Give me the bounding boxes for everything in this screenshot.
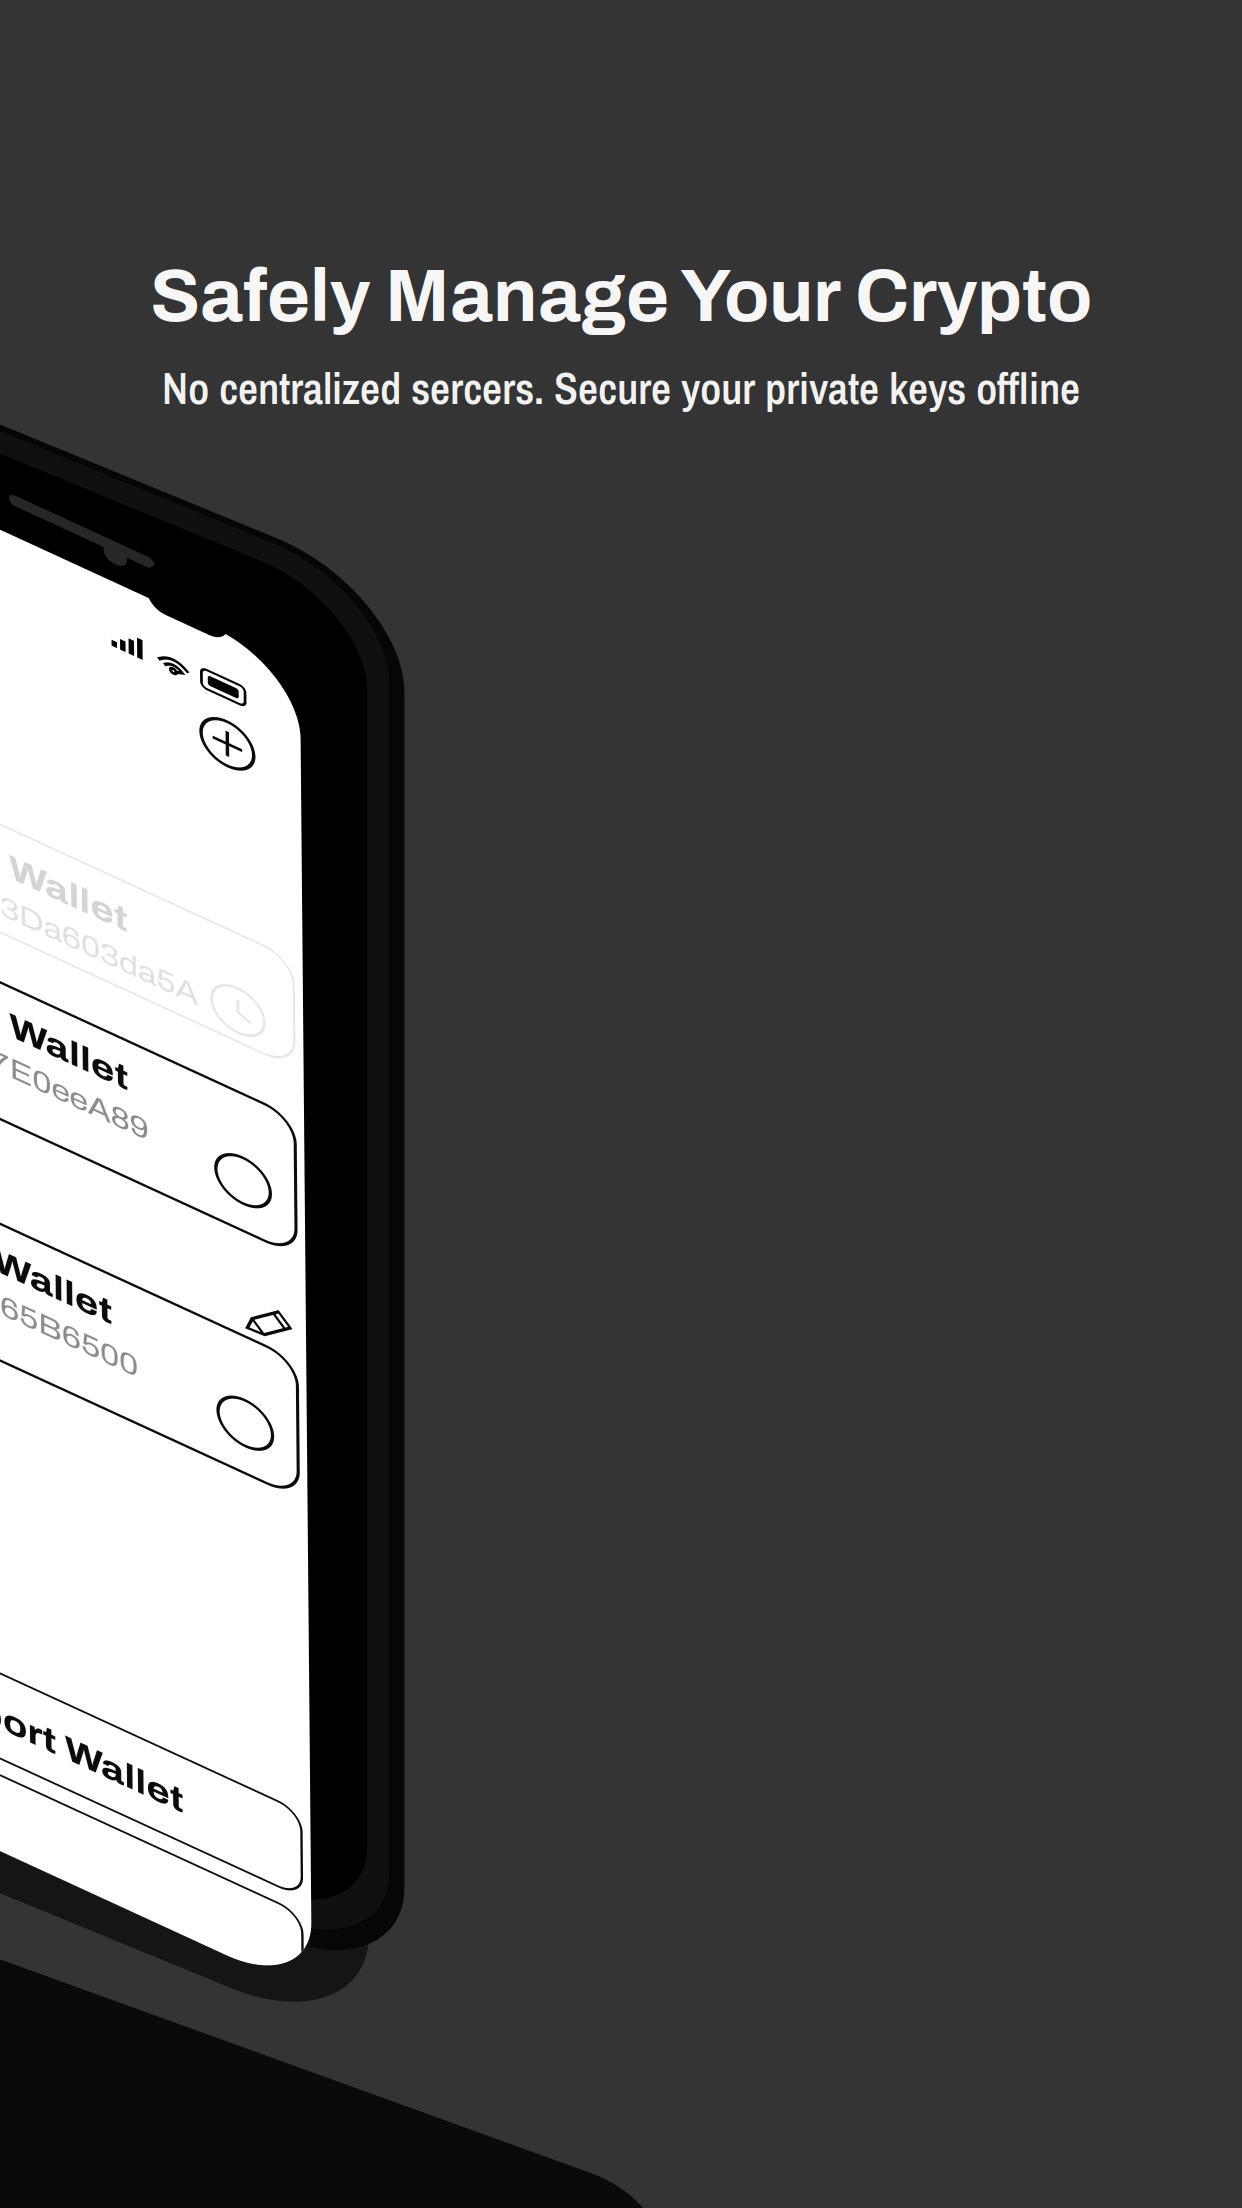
staticText: 0x9Ab31F…65B6500 bbox=[282, 1000, 634, 1040]
staticText: Safely Manage Your Crypto bbox=[150, 256, 1092, 336]
staticText: No centralized sercers. Secure your priv… bbox=[162, 358, 1080, 418]
staticText: Treasury Wallet bbox=[282, 940, 606, 988]
button[interactable]: Hardware Wallet bbox=[170, 388, 810, 530]
staticText: Import Wallet bbox=[402, 1540, 680, 1588]
staticText: 0x4f2B9d…7E0eeA89 bbox=[282, 682, 648, 722]
button[interactable]: Ethereum Wallet bbox=[170, 596, 810, 776]
button[interactable]: Wallet actions bbox=[170, 1640, 810, 1816]
staticText: Ethereum Wallet bbox=[282, 622, 626, 670]
button[interactable]: Treasury Wallet bbox=[170, 914, 810, 1094]
button[interactable]: Import Wallet bbox=[170, 1506, 810, 1618]
